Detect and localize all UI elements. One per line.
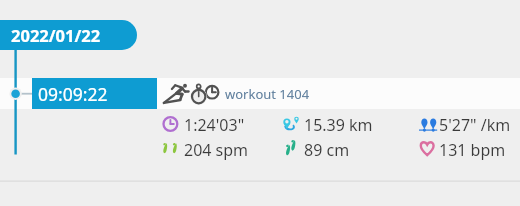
- button[interactable]: [282, 138, 394, 161]
- staticText: 5'27" /km: [439, 114, 511, 136]
- button[interactable]: [160, 138, 272, 161]
- button[interactable]: 09:09:22: [32, 78, 157, 109]
- staticText: 204 spm: [184, 139, 249, 161]
- staticText: workout 1404: [225, 85, 310, 103]
- button[interactable]: Running workout: [162, 76, 224, 104]
- staticText: 1:24'03": [184, 114, 245, 136]
- staticText: 89 cm: [304, 139, 350, 161]
- staticText: 131 bpm: [439, 139, 506, 161]
- staticText: 09:09:22: [38, 82, 108, 106]
- button[interactable]: [160, 113, 272, 136]
- button[interactable]: 2022/01/22: [0, 20, 137, 50]
- staticText: 15.39 km: [304, 114, 373, 136]
- button[interactable]: [418, 138, 520, 161]
- button[interactable]: [282, 113, 394, 136]
- staticText: 2022/01/22: [11, 24, 101, 46]
- button[interactable]: workout 1404: [225, 85, 310, 103]
- button[interactable]: [418, 113, 520, 136]
